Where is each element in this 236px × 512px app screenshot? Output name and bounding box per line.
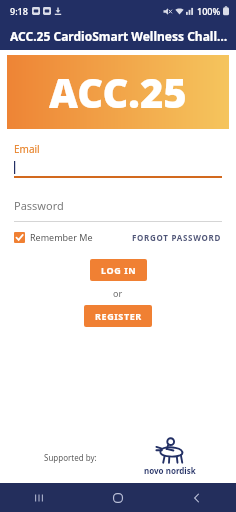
- staticText: 9:18: [10, 5, 28, 17]
- button[interactable]: Recent apps: [0, 483, 78, 512]
- button[interactable]: LOG IN: [90, 259, 147, 281]
- staticText: FORGOT PASSWORD: [132, 232, 222, 243]
- button[interactable]: FORGOT PASSWORD: [132, 232, 222, 243]
- button[interactable]: ACC.25 CardioSmart Wellness Chall…: [0, 22, 236, 50]
- staticText: Supported by:: [44, 452, 97, 463]
- staticText: LOG IN: [101, 264, 137, 276]
- staticText: REGISTER: [95, 310, 142, 322]
- staticText: ACC.25 CardioSmart Wellness Chall…: [10, 28, 228, 44]
- staticText: novo nordisk: [144, 465, 196, 476]
- button[interactable]: Remember Me: [14, 231, 93, 243]
- button[interactable]: REGISTER: [84, 305, 152, 327]
- button[interactable]: Password: [14, 196, 222, 215]
- button[interactable]: Home: [78, 483, 157, 512]
- staticText: Password: [14, 198, 64, 213]
- staticText: 100%: [197, 5, 221, 17]
- button[interactable]: Back: [157, 483, 236, 512]
- button[interactable]: [14, 159, 222, 176]
- staticText: or: [113, 287, 123, 299]
- staticText: Remember Me: [30, 231, 93, 243]
- staticText: ACC.25: [49, 65, 187, 119]
- staticText: Email: [14, 142, 40, 156]
